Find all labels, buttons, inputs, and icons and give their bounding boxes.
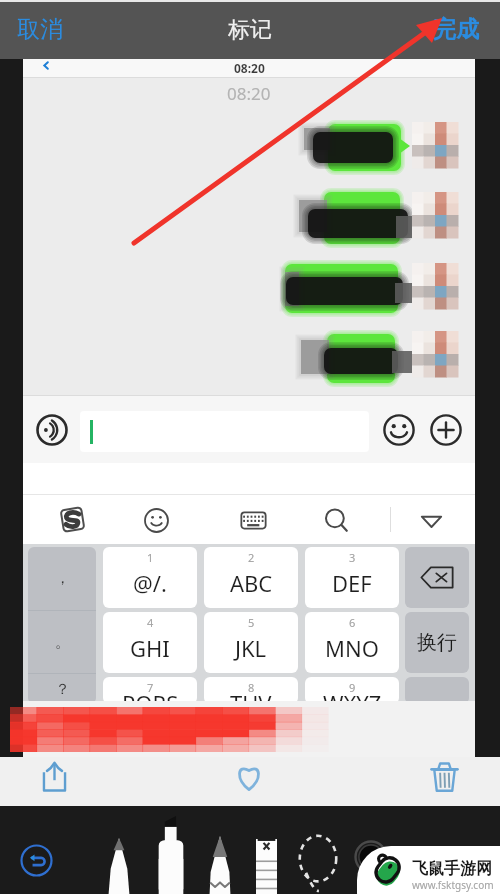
button[interactable] <box>412 263 458 309</box>
staticText: 8 <box>248 680 255 695</box>
button[interactable]: 2 <box>204 547 298 608</box>
button[interactable]: 换行 <box>405 612 469 673</box>
staticText: GHI <box>130 633 170 663</box>
button[interactable]: ， <box>28 547 96 610</box>
button[interactable]: Input method <box>58 505 86 533</box>
button[interactable]: 6 <box>305 612 399 673</box>
staticText: ABC <box>230 568 273 598</box>
staticText: www.fsktgsy.com <box>412 878 494 892</box>
staticText: 取消 <box>17 15 63 44</box>
button[interactable]: Eraser <box>256 839 277 894</box>
staticText: 6 <box>349 615 356 630</box>
staticText: 飞鼠手游网 <box>412 859 492 879</box>
staticText: 2 <box>248 550 255 565</box>
staticText: 3 <box>349 550 356 565</box>
button[interactable]: ？ <box>28 674 96 704</box>
staticText: 08:20 <box>234 60 265 76</box>
staticText: MNO <box>325 633 379 663</box>
button[interactable]: Backspace <box>405 547 469 608</box>
button[interactable]: 1 <box>103 547 197 608</box>
staticText: TUV <box>230 688 272 704</box>
staticText: ？ <box>55 680 70 699</box>
staticText: @/. <box>133 568 167 598</box>
staticText: 完成 <box>433 15 479 44</box>
staticText: WXYZ <box>323 688 382 704</box>
button[interactable]: 7 <box>103 677 197 704</box>
button[interactable] <box>405 677 469 704</box>
button[interactable]: Favorite <box>233 761 265 793</box>
staticText: 1 <box>147 550 154 565</box>
button[interactable]: Undo <box>19 843 53 877</box>
button[interactable] <box>412 122 458 168</box>
staticText: DEF <box>332 568 372 598</box>
button[interactable]: Lasso <box>294 831 342 891</box>
staticText: 标记 <box>228 16 272 44</box>
staticText: 换行 <box>417 630 457 655</box>
button[interactable]: 9 <box>305 677 399 704</box>
button[interactable]: Pencil <box>207 836 233 894</box>
button[interactable]: 5 <box>204 612 298 673</box>
button[interactable]: 3 <box>305 547 399 608</box>
button[interactable]: More <box>430 414 462 446</box>
button[interactable]: Color <box>354 840 388 874</box>
button[interactable] <box>80 411 369 452</box>
staticText: JKL <box>235 633 267 663</box>
button[interactable]: Hide keyboard <box>417 506 445 534</box>
staticText: PQRS <box>122 688 179 704</box>
button[interactable]: 取消 <box>0 0 118 59</box>
button[interactable]: 完成 <box>382 0 500 59</box>
staticText: 4 <box>147 615 154 630</box>
staticText: 5 <box>248 615 255 630</box>
button[interactable]: Share <box>38 760 71 793</box>
button[interactable]: Search <box>322 506 350 534</box>
staticText: 7 <box>147 680 154 695</box>
staticText: 9 <box>349 680 356 695</box>
staticText: ， <box>55 569 70 588</box>
button[interactable]: Emoji panel <box>142 506 170 534</box>
button[interactable]: 8 <box>204 677 298 704</box>
button[interactable]: Pen <box>106 838 132 894</box>
button[interactable]: Highlighter <box>157 816 185 894</box>
button[interactable] <box>412 192 458 238</box>
staticText: 08:20 <box>227 82 271 105</box>
button[interactable]: Keyboard <box>239 506 267 534</box>
button[interactable] <box>412 331 458 377</box>
button[interactable]: Voice message <box>36 414 68 446</box>
button[interactable]: Delete <box>428 760 461 793</box>
staticText: 。 <box>55 633 70 652</box>
button[interactable]: 4 <box>103 612 197 673</box>
button[interactable]: Emoji <box>383 414 415 446</box>
